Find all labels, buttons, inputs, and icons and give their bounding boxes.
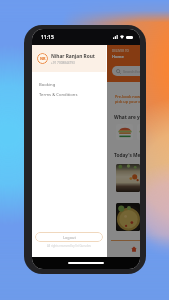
button[interactable]: Search for food	[112, 66, 140, 76]
button[interactable]	[116, 124, 133, 140]
staticText: DELIVER TO	[112, 49, 129, 53]
staticText: NR	[40, 56, 46, 61]
staticText: What are you craving for?	[114, 114, 140, 121]
staticText: Terms & Conditions	[39, 92, 78, 98]
staticText: 11:15	[41, 34, 54, 41]
button[interactable]: NR	[32, 45, 106, 72]
button[interactable]: Logout	[35, 232, 103, 242]
staticText: Booking	[39, 82, 56, 88]
button[interactable]	[116, 203, 140, 231]
staticText: All rights reserved by Sri Gurudev	[47, 244, 91, 248]
button[interactable]	[116, 164, 140, 192]
staticText: +91 7008844793	[51, 61, 75, 65]
staticText: Search for food	[123, 69, 140, 74]
button[interactable]: Booking	[32, 80, 106, 90]
staticText: Home	[112, 54, 124, 59]
staticText: Pre-book now and skip the queue, pick up…	[115, 94, 140, 105]
staticText: Today's Menu	[114, 152, 140, 159]
button[interactable]: Terms & Conditions	[32, 90, 106, 100]
staticText: Logout	[63, 235, 76, 240]
button[interactable]	[137, 124, 140, 140]
button[interactable]: Home	[123, 241, 140, 257]
staticText: Nihar Ranjan Rout	[51, 53, 95, 60]
